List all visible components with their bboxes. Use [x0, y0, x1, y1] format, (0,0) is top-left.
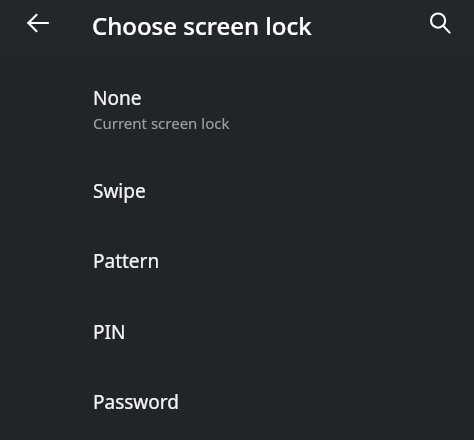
- button[interactable]: Navigate up: [15, 0, 61, 46]
- staticText: Choose screen lock: [92, 9, 312, 42]
- button[interactable]: Search: [417, 0, 463, 46]
- button[interactable]: PIN: [0, 307, 474, 357]
- staticText: PIN: [93, 319, 126, 345]
- button[interactable]: Password: [0, 377, 474, 427]
- button[interactable]: Swipe: [0, 166, 474, 216]
- button[interactable]: None: [0, 72, 474, 140]
- staticText: Current screen lock: [93, 113, 230, 133]
- staticText: None: [93, 85, 142, 111]
- staticText: Swipe: [93, 178, 146, 204]
- staticText: Password: [93, 389, 179, 415]
- button[interactable]: Pattern: [0, 236, 474, 286]
- staticText: Pattern: [93, 248, 160, 274]
